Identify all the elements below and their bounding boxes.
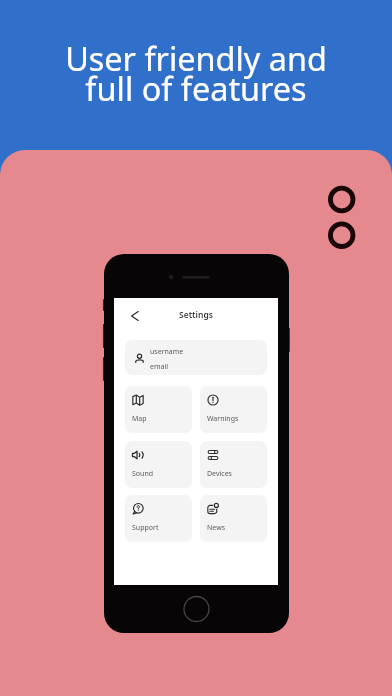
button[interactable]: Warnings [200, 386, 267, 433]
staticText: email [150, 362, 169, 372]
staticText: Map [132, 414, 147, 424]
button[interactable]: username [125, 340, 267, 375]
staticText: Sound [132, 469, 154, 479]
staticText: News [207, 523, 225, 533]
staticText: Support [132, 523, 159, 533]
staticText: Warnings [207, 414, 239, 424]
staticText: username [150, 347, 184, 357]
staticText: User friendly and full of features [65, 36, 327, 111]
button[interactable]: News [200, 495, 267, 542]
button[interactable]: Back [120, 302, 148, 330]
button[interactable]: Sound [125, 441, 192, 488]
staticText: Devices [207, 469, 232, 479]
button[interactable]: Support [125, 495, 192, 542]
button[interactable]: Map [125, 386, 192, 433]
button[interactable]: Devices [200, 441, 267, 488]
staticText: Settings [179, 309, 213, 321]
